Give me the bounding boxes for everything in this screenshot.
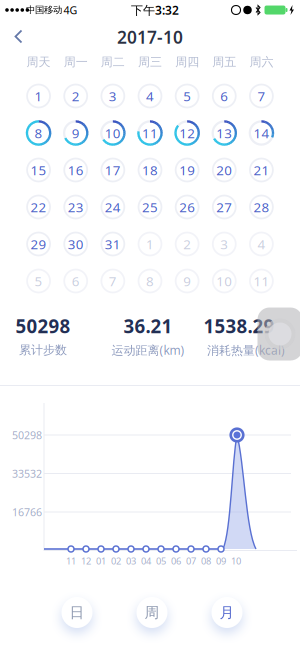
staticText: 周四: [175, 55, 199, 69]
button[interactable]: 10: [97, 117, 129, 149]
staticText: 1: [35, 87, 43, 105]
staticText: 23: [68, 198, 84, 216]
button[interactable]: 19: [171, 154, 203, 186]
staticText: 19: [179, 161, 195, 179]
staticText: 消耗热量(kcal): [207, 342, 285, 358]
button[interactable]: 5: [171, 80, 203, 112]
button[interactable]: 1: [23, 80, 55, 112]
button[interactable]: 12: [171, 117, 203, 149]
button[interactable]: 28: [245, 191, 277, 223]
button[interactable]: 4: [245, 228, 277, 260]
button[interactable]: 8: [134, 265, 166, 297]
button[interactable]: 27: [208, 191, 240, 223]
staticText: 中国移动: [26, 4, 62, 16]
button[interactable]: 18: [134, 154, 166, 186]
staticText: 6: [72, 272, 80, 290]
staticText: 33532: [12, 466, 42, 481]
button[interactable]: 日: [55, 590, 99, 634]
button[interactable]: 月: [205, 590, 249, 634]
button[interactable]: 22: [23, 191, 55, 223]
staticText: 25: [142, 198, 158, 216]
button[interactable]: 4: [134, 80, 166, 112]
staticText: 03: [126, 555, 136, 567]
staticText: 17: [105, 161, 121, 179]
button[interactable]: 31: [97, 228, 129, 260]
staticText: 15: [31, 161, 47, 179]
button[interactable]: 5: [23, 265, 55, 297]
staticText: 50298: [12, 428, 42, 442]
staticText: 6: [220, 87, 228, 105]
staticText: 3: [220, 235, 228, 253]
button[interactable]: AssistiveTouch: [257, 307, 300, 360]
staticText: 31: [105, 235, 121, 253]
staticText: 09: [216, 555, 226, 567]
button[interactable]: 2: [171, 228, 203, 260]
button[interactable]: 3: [208, 228, 240, 260]
staticText: 50298: [15, 314, 70, 338]
staticText: 2017-10: [117, 25, 183, 48]
staticText: 27: [216, 198, 232, 216]
staticText: 周: [144, 603, 159, 621]
staticText: 日: [69, 603, 84, 621]
button[interactable]: 20: [208, 154, 240, 186]
button[interactable]: 16: [60, 154, 92, 186]
button[interactable]: 6: [208, 80, 240, 112]
button[interactable]: 3: [97, 80, 129, 112]
button[interactable]: 6: [60, 265, 92, 297]
staticText: 周三: [138, 55, 162, 69]
staticText: 06: [171, 555, 181, 567]
staticText: 22: [31, 198, 47, 216]
staticText: 4G: [63, 3, 77, 17]
staticText: 2: [72, 87, 80, 105]
button[interactable]: Back: [5, 22, 33, 50]
staticText: 20: [216, 161, 232, 179]
staticText: 16766: [12, 505, 42, 519]
button[interactable]: 13: [208, 117, 240, 149]
button[interactable]: 29: [23, 228, 55, 260]
staticText: 1538.29: [203, 314, 274, 338]
button[interactable]: 7: [97, 265, 129, 297]
staticText: 周五: [212, 55, 236, 69]
button[interactable]: 24: [97, 191, 129, 223]
staticText: 10: [231, 555, 241, 567]
button[interactable]: 15: [23, 154, 55, 186]
staticText: 30: [68, 235, 84, 253]
staticText: 29: [31, 235, 47, 253]
staticText: 周六: [249, 55, 273, 69]
staticText: 13: [216, 124, 232, 142]
staticText: 21: [253, 161, 269, 179]
staticText: 下午3:32: [131, 2, 179, 18]
button[interactable]: 1: [134, 228, 166, 260]
staticText: 10: [105, 124, 121, 142]
button[interactable]: 26: [171, 191, 203, 223]
button[interactable]: 17: [97, 154, 129, 186]
button[interactable]: 2: [60, 80, 92, 112]
staticText: 4: [146, 87, 154, 105]
button[interactable]: 8: [23, 117, 55, 149]
staticText: 11: [142, 124, 158, 142]
button[interactable]: 23: [60, 191, 92, 223]
staticText: 26: [179, 198, 195, 216]
staticText: 4: [257, 235, 265, 253]
staticText: 周二: [101, 55, 125, 69]
staticText: 7: [109, 272, 117, 290]
staticText: 周一: [64, 55, 88, 69]
staticText: 11: [66, 555, 76, 567]
staticText: 12: [179, 124, 195, 142]
button[interactable]: 25: [134, 191, 166, 223]
button[interactable]: 10: [208, 265, 240, 297]
button[interactable]: 30: [60, 228, 92, 260]
staticText: 01: [96, 555, 106, 567]
staticText: 28: [253, 198, 269, 216]
button[interactable]: 11: [245, 265, 277, 297]
button[interactable]: 21: [245, 154, 277, 186]
button[interactable]: 9: [60, 117, 92, 149]
staticText: 3: [109, 87, 117, 105]
button[interactable]: 7: [245, 80, 277, 112]
button[interactable]: 9: [171, 265, 203, 297]
button[interactable]: 11: [134, 117, 166, 149]
staticText: 9: [183, 272, 191, 290]
staticText: 月: [219, 603, 234, 621]
button[interactable]: 周: [130, 590, 174, 634]
button[interactable]: 14: [245, 117, 277, 149]
